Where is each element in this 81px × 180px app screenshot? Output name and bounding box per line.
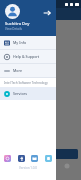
staticText: My Info <box>13 40 27 45</box>
button[interactable]: Profile picture <box>5 4 20 19</box>
button[interactable]: Help & Support <box>0 50 56 63</box>
staticText: View Details <box>5 27 22 31</box>
button[interactable]: LinkedIn <box>45 155 52 162</box>
button[interactable]: Services <box>0 87 56 100</box>
button[interactable]: Facebook <box>18 155 25 162</box>
button[interactable]: Instagram <box>4 155 11 162</box>
staticText: Help & Support <box>13 54 40 59</box>
button[interactable]: My Info <box>0 36 56 49</box>
staticText: Suchitra Dey <box>5 21 30 26</box>
button[interactable]: More <box>0 64 56 77</box>
staticText: Services <box>13 91 27 96</box>
staticText: Version 1.0.0 <box>19 166 38 170</box>
staticText: More <box>13 68 23 73</box>
button[interactable]: Switch account <box>43 9 51 17</box>
button[interactable]: Card <box>53 149 78 159</box>
staticText: Intel Tech Software Technology <box>4 81 48 85</box>
button[interactable]: Twitter <box>31 155 38 162</box>
